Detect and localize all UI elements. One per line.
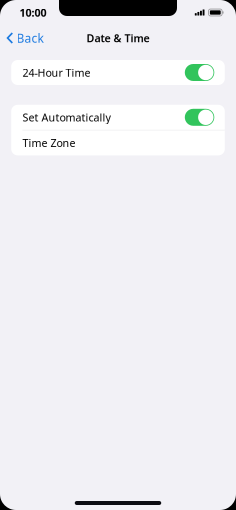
button[interactable]: Time Zone <box>11 130 225 155</box>
staticText: 24-Hour Time <box>22 65 90 80</box>
button[interactable]: Back <box>0 27 51 49</box>
staticText: Back <box>17 30 44 46</box>
staticText: 10:00 <box>19 5 46 20</box>
staticText: Set Automatically <box>22 110 110 124</box>
staticText: Time Zone <box>22 136 75 150</box>
button[interactable]: Set Automatically <box>11 105 225 130</box>
button[interactable]: 24-Hour Time <box>11 60 225 85</box>
staticText: Date & Time <box>86 31 149 45</box>
